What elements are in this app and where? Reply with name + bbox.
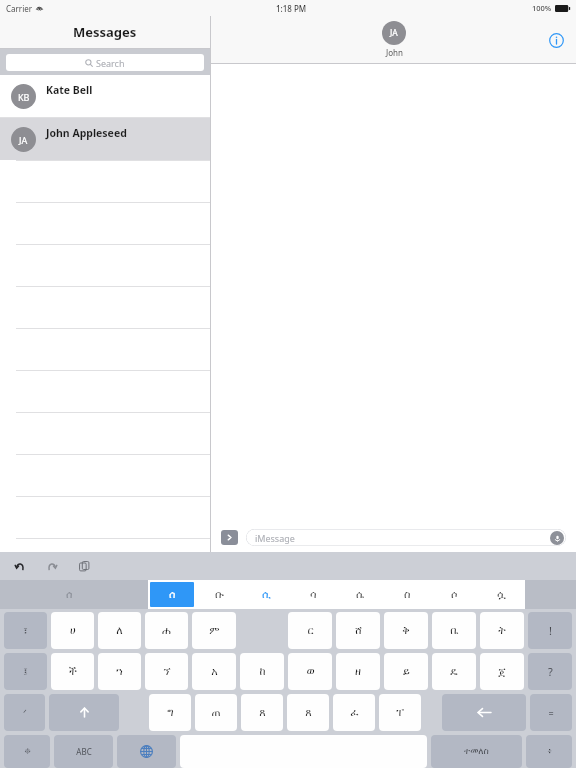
staticText: ተመለስ (464, 747, 489, 756)
button[interactable]: ከ (240, 653, 284, 690)
staticText: ፐ (396, 707, 404, 718)
button[interactable]: ሶ (433, 582, 476, 607)
button[interactable]: ት (480, 612, 524, 649)
staticText: John Appleseed (46, 126, 127, 140)
staticText: ? (548, 664, 553, 679)
button[interactable]: ኘ (145, 653, 188, 690)
staticText: ዴ (450, 666, 458, 677)
button[interactable]: Search (6, 54, 204, 71)
button[interactable]: ፠ (4, 735, 50, 768)
button[interactable]: ᐟ (4, 694, 45, 731)
button[interactable]: JA (382, 21, 406, 58)
button[interactable]: Paste (76, 558, 92, 574)
staticText: ሷ (497, 589, 506, 600)
button[interactable]: ፣ (4, 612, 47, 649)
button[interactable]: ቅ (384, 612, 428, 649)
button[interactable]: ፥ (526, 735, 572, 768)
button[interactable]: ሸ (336, 612, 380, 649)
staticText: 1:18 PM (276, 3, 307, 14)
button[interactable]: ሷ (480, 582, 523, 607)
staticText: ሐ (162, 625, 171, 636)
button[interactable]: Backspace (442, 694, 526, 731)
staticText: አ (211, 666, 218, 677)
staticText: ሳ (310, 589, 317, 600)
button[interactable]: JA (0, 118, 210, 160)
button[interactable]: Undo (12, 558, 28, 574)
button[interactable]: ዘ (336, 653, 380, 690)
button[interactable]: Shift (49, 694, 119, 731)
staticText: JA (390, 27, 398, 39)
button[interactable]: ተመለስ (431, 735, 522, 768)
button[interactable]: ሱ (198, 582, 241, 607)
button[interactable]: ፐ (379, 694, 421, 731)
staticText: ፣ (23, 625, 28, 636)
staticText: ABC (76, 746, 92, 757)
button[interactable]: ሴ (339, 582, 382, 607)
button[interactable]: ፈ (333, 694, 375, 731)
button[interactable]: ABC (54, 735, 113, 768)
button[interactable]: ር (288, 612, 332, 649)
button[interactable]: ስ (386, 582, 429, 607)
button[interactable]: KB (0, 75, 210, 117)
button[interactable]: ዴ (432, 653, 476, 690)
staticText: ፤ (23, 666, 28, 677)
button[interactable]: ሰ (150, 582, 194, 607)
staticText: iMessage (255, 532, 295, 544)
staticText: ች (69, 666, 77, 677)
staticText: ቅ (402, 625, 410, 636)
button[interactable]: ግ (149, 694, 191, 731)
button[interactable]: ኀ (98, 653, 141, 690)
staticText: ᐟ (23, 708, 27, 718)
staticText: ሴ (356, 589, 365, 600)
button[interactable]: Details (546, 30, 566, 50)
button[interactable]: iMessage (246, 529, 566, 546)
button[interactable]: ሲ (245, 582, 288, 607)
button[interactable]: Redo (44, 558, 60, 574)
staticText: JA (19, 134, 28, 146)
button[interactable]: ቤ (432, 612, 476, 649)
staticText: Search (96, 57, 125, 69)
staticText: ወ (306, 666, 315, 677)
button[interactable]: ሀ (51, 612, 94, 649)
button[interactable]: ሳ (292, 582, 335, 607)
staticText: ሱ (215, 589, 224, 600)
button[interactable]: ! (528, 612, 572, 649)
staticText: = (548, 707, 554, 719)
staticText: Kate Bell (46, 83, 93, 97)
staticText: KB (18, 91, 30, 103)
staticText: ፥ (547, 747, 552, 756)
staticText: ሲ (262, 589, 271, 600)
button[interactable]: Next keyboard (117, 735, 176, 768)
button[interactable]: ? (528, 653, 572, 690)
staticText: ጸ (305, 707, 312, 718)
staticText: ጠ (211, 707, 221, 718)
staticText: ር (307, 625, 314, 636)
staticText: ሶ (451, 589, 458, 600)
button[interactable]: Apps (221, 530, 238, 545)
button[interactable]: ች (51, 653, 94, 690)
button[interactable]: ለ (98, 612, 141, 649)
button[interactable]: ጸ (241, 694, 283, 731)
staticText: Carrier (6, 3, 33, 14)
button[interactable]: ጠ (195, 694, 237, 731)
button[interactable]: ጸ (287, 694, 329, 731)
staticText: ለ (116, 625, 123, 636)
button[interactable]: ወ (288, 653, 332, 690)
button[interactable]: ሐ (145, 612, 188, 649)
staticText: 100% (532, 3, 552, 13)
button[interactable]: ም (192, 612, 236, 649)
staticText: ! (549, 623, 552, 638)
button[interactable]: አ (192, 653, 236, 690)
staticText: ይ (403, 666, 410, 677)
staticText: ሰ (66, 589, 73, 600)
staticText: ጀ (498, 666, 506, 677)
button[interactable]: ይ (384, 653, 428, 690)
button[interactable]: = (530, 694, 572, 731)
button[interactable]: ፤ (4, 653, 47, 690)
staticText: ስ (404, 589, 411, 600)
button[interactable]: Dictate (550, 531, 564, 545)
staticText: ኀ (116, 666, 123, 677)
staticText: ፠ (24, 747, 31, 756)
button[interactable]: ጀ (480, 653, 524, 690)
